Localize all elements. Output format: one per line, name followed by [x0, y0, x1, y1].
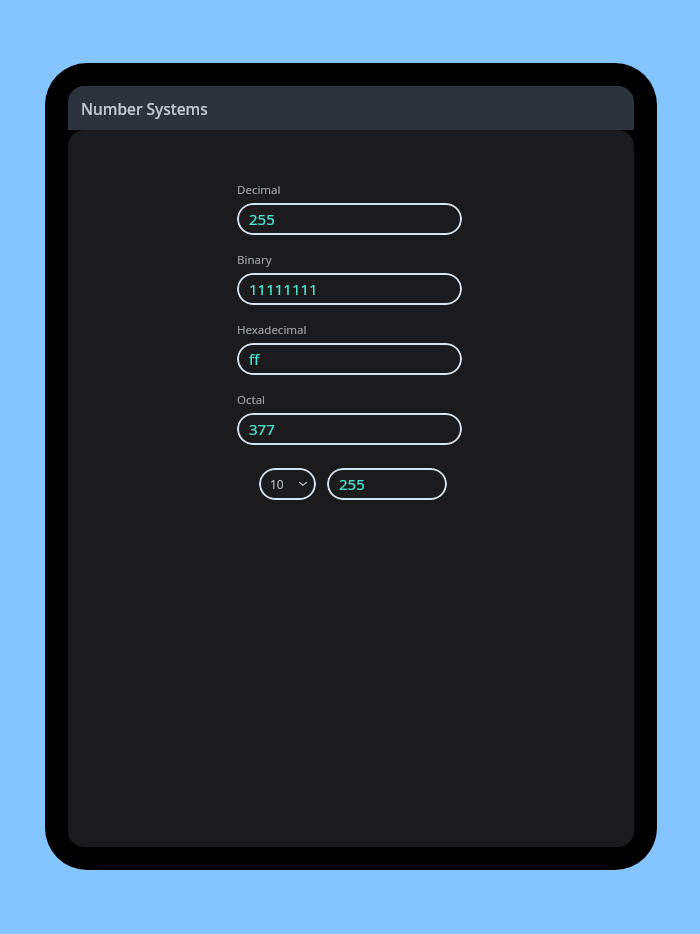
button[interactable]: 377 — [237, 413, 462, 445]
staticText: 255 — [339, 474, 365, 494]
staticText: 377 — [249, 419, 275, 439]
staticText: Binary — [237, 252, 272, 268]
staticText: 11111111 — [249, 279, 318, 299]
button[interactable]: 255 — [327, 468, 447, 500]
staticText: Hexadecimal — [237, 322, 307, 338]
button[interactable]: 11111111 — [237, 273, 462, 305]
staticText: Octal — [237, 392, 266, 408]
staticText: 255 — [249, 209, 275, 229]
staticText: 10 — [270, 476, 284, 492]
staticText: Decimal — [237, 182, 281, 198]
staticText: Number Systems — [81, 98, 208, 119]
button[interactable]: 255 — [237, 203, 462, 235]
staticText: ff — [249, 349, 260, 369]
button[interactable]: ff — [237, 343, 462, 375]
button[interactable]: Select base — [259, 468, 316, 500]
